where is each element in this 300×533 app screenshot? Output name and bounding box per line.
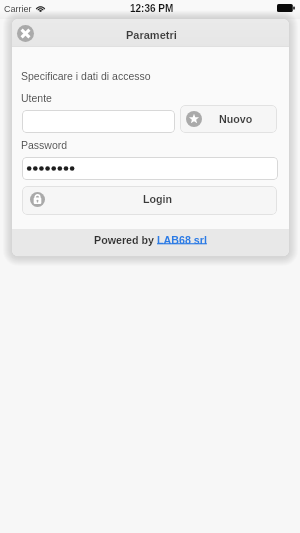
button[interactable]	[22, 157, 278, 180]
staticText: Login	[143, 193, 173, 205]
staticText: Utente	[21, 92, 52, 104]
button[interactable]	[22, 110, 175, 133]
staticText: Powered by	[94, 234, 157, 246]
button[interactable]: Chiudi	[13, 20, 38, 46]
staticText: Nuovo	[219, 113, 253, 125]
button[interactable]: Nuovo	[180, 105, 277, 133]
button[interactable]: LAB68 srl	[157, 234, 207, 246]
staticText: 12:36 PM	[130, 3, 174, 14]
staticText: Specificare i dati di accesso	[21, 70, 151, 82]
staticText: Parametri	[126, 29, 177, 41]
staticText: Password	[21, 139, 68, 151]
staticText: Carrier	[4, 4, 32, 14]
button[interactable]: Login	[22, 186, 277, 215]
